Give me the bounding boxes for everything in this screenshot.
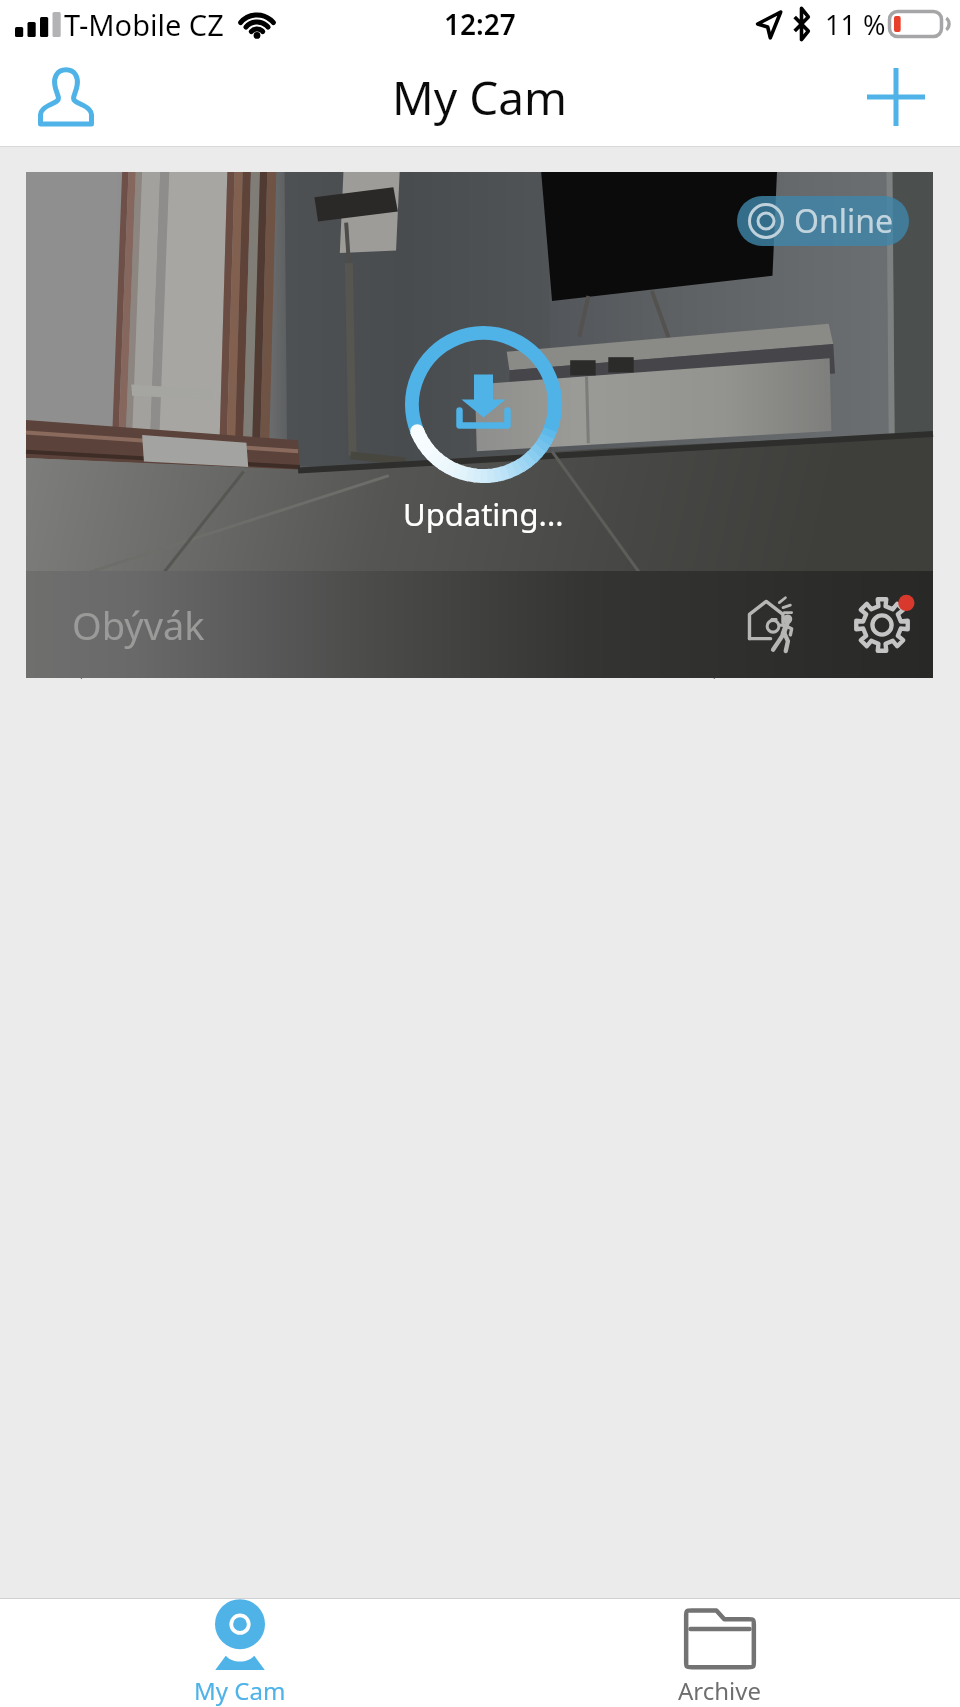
staticText: Updating...: [403, 493, 564, 535]
staticText: 11 %: [825, 6, 886, 43]
staticText: T-Mobile CZ: [64, 5, 224, 44]
staticText: Online: [794, 199, 894, 243]
button[interactable]: Add camera: [858, 59, 934, 135]
button[interactable]: Online: [746, 199, 894, 243]
button[interactable]: Account: [30, 61, 102, 133]
staticText: Obývák: [72, 599, 205, 651]
staticText: My Cam: [392, 66, 568, 129]
button[interactable]: My Cam: [0, 1599, 480, 1707]
staticText: Archive: [678, 1674, 762, 1707]
button[interactable]: Settings: [844, 587, 920, 663]
button[interactable]: Archive: [480, 1599, 960, 1707]
button[interactable]: Online: [26, 172, 933, 678]
staticText: 12:27: [444, 5, 516, 43]
button[interactable]: Motion detection: [740, 587, 816, 663]
staticText: My Cam: [194, 1674, 286, 1707]
